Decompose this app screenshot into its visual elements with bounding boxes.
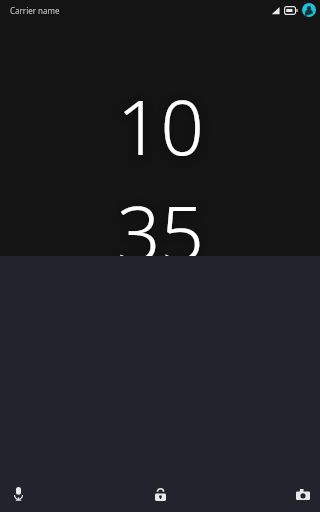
staticText: 10	[117, 74, 204, 178]
staticText: Carrier name	[10, 5, 60, 16]
button[interactable]: Camera	[289, 480, 317, 508]
button[interactable]: Voice assistant	[4, 480, 32, 508]
staticText: 35	[117, 180, 204, 256]
button[interactable]: Lock	[145, 479, 175, 509]
